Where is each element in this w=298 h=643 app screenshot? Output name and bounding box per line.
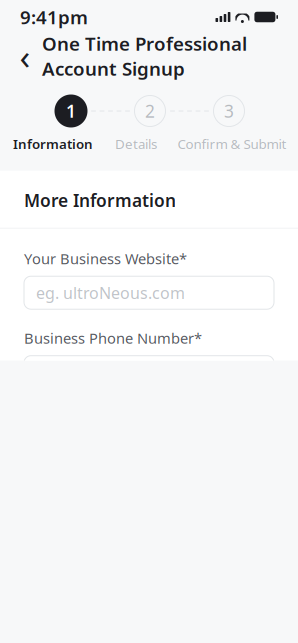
staticText: eg. ultroNeous.com: [36, 282, 185, 303]
button[interactable]: Back: [8, 36, 42, 76]
staticText: 3: [224, 99, 234, 122]
staticText: Information: [13, 135, 93, 153]
staticText: Details: [115, 135, 157, 153]
staticText: Business Phone Number*: [24, 328, 202, 348]
staticText: Confirm & Submit: [177, 135, 286, 153]
staticText: One Time Professional Account Signup: [42, 31, 247, 81]
staticText: Your Business Website*: [24, 249, 187, 268]
staticText: More Information: [24, 189, 176, 212]
staticText: 1: [66, 99, 76, 122]
staticText: 9:41pm: [20, 5, 88, 29]
staticText: 2: [145, 99, 155, 122]
staticText: ‹: [19, 33, 30, 79]
button[interactable]: eg. ultroNeous.com: [24, 276, 274, 309]
